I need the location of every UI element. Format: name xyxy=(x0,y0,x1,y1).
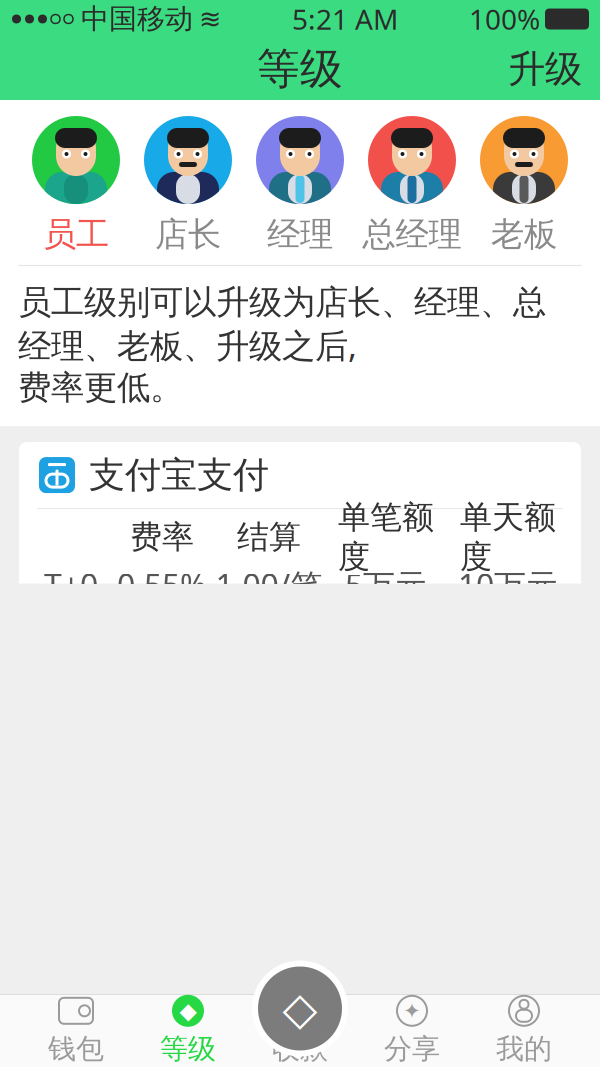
staticText: ✦ xyxy=(403,999,421,1023)
staticText: 10万元 xyxy=(458,564,558,606)
staticText: 5万元 xyxy=(345,564,427,606)
staticText: 费率 xyxy=(130,517,194,557)
staticText: 0.55% xyxy=(117,1034,207,1067)
staticText: ◇ xyxy=(282,983,317,1034)
staticText: 分享 xyxy=(384,1032,440,1066)
staticText: 店长 xyxy=(155,214,221,255)
button[interactable]: 钱包 xyxy=(20,995,132,1067)
staticText: 员工 xyxy=(43,214,109,255)
staticText: 结算 xyxy=(237,517,301,557)
staticText: 费率 xyxy=(130,987,194,1027)
button[interactable]: 升级 xyxy=(490,36,600,102)
staticText: ◆ xyxy=(179,998,196,1024)
button[interactable]: 员工 xyxy=(20,112,132,259)
staticText: 100% xyxy=(469,0,540,38)
staticText: 收款 xyxy=(272,1032,328,1066)
staticText: 老板 xyxy=(491,214,557,255)
staticText: 0.55% xyxy=(117,564,207,606)
staticText: 总经理 xyxy=(362,214,461,255)
button[interactable]: ◆ xyxy=(132,995,244,1067)
staticText: 1.00/笔 xyxy=(215,1034,322,1067)
staticText: T+0 xyxy=(44,564,98,606)
button[interactable]: 店长 xyxy=(132,112,244,259)
button[interactable]: 经理 xyxy=(244,112,356,259)
staticText: 10万元 xyxy=(458,1034,558,1067)
staticText: T+0 xyxy=(44,1034,98,1067)
staticText: 经理 xyxy=(267,214,333,255)
staticText: 员工级别可以升级为店长、经理、总经理、老板、升级之后, 费率更低。 xyxy=(18,282,546,408)
staticText: ≋ xyxy=(199,4,221,34)
button[interactable]: 老板 xyxy=(468,112,580,259)
staticText: 单笔额度 xyxy=(338,498,434,576)
staticText: 我的 xyxy=(496,1032,552,1066)
staticText: 支付宝支付 xyxy=(89,453,269,497)
staticText: 等级 xyxy=(257,43,343,95)
button[interactable]: 收款 xyxy=(244,995,356,1067)
staticText: 单天额度 xyxy=(460,498,556,576)
staticText: 钱包 xyxy=(48,1032,104,1066)
staticText: 结算 xyxy=(237,987,301,1027)
button[interactable]: 总经理 xyxy=(356,112,468,259)
staticText: 升级 xyxy=(508,46,582,92)
staticText: 1.00/笔 xyxy=(215,564,322,606)
staticText: 单笔额度 xyxy=(338,968,434,1046)
button[interactable]: 收款 xyxy=(252,960,348,1056)
staticText: 5:21 AM xyxy=(292,0,398,38)
staticText: 单天额度 xyxy=(460,968,556,1046)
button[interactable]: 我的 xyxy=(468,995,580,1067)
staticText: 5万元 xyxy=(345,1034,427,1067)
staticText: 等级 xyxy=(160,1032,216,1066)
button[interactable]: ✦ xyxy=(356,995,468,1067)
staticText: 中国移动 xyxy=(81,2,193,36)
